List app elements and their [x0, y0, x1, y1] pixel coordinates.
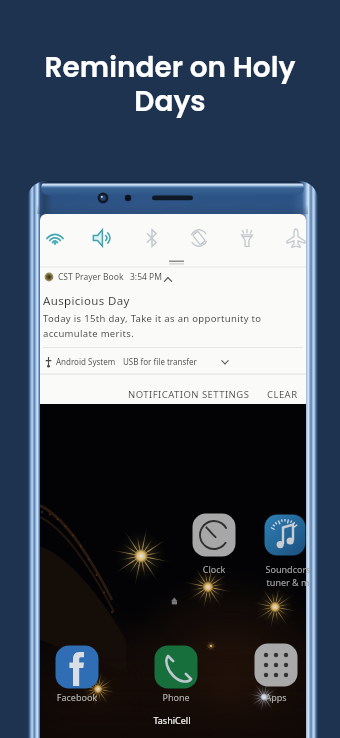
- staticText: Soundcors: [243, 563, 333, 575]
- staticText: USB for file transfer: [123, 356, 197, 367]
- staticText: 3:54 PM: [130, 271, 162, 283]
- staticText: tuner & m: [243, 576, 333, 588]
- staticText: TashiCell: [127, 714, 217, 726]
- staticText: Clock: [169, 563, 259, 575]
- staticText: CST Prayer Book: [58, 271, 124, 283]
- staticText: Apps: [231, 691, 321, 703]
- staticText: Android System: [56, 356, 116, 367]
- staticText: Reminder on Holy Days: [24, 48, 316, 121]
- staticText: Facebook: [32, 691, 122, 703]
- staticText: NOTIFICATION SETTINGS: [128, 388, 250, 400]
- button[interactable]: NOTIFICATION SETTINGS: [120, 383, 258, 405]
- staticText: Auspicious Day: [43, 293, 130, 309]
- staticText: CLEAR: [267, 388, 298, 400]
- staticText: Phone: [131, 691, 221, 703]
- button[interactable]: CLEAR: [259, 383, 306, 405]
- staticText: Today is 15th day, Take it as an opportu…: [43, 312, 262, 340]
